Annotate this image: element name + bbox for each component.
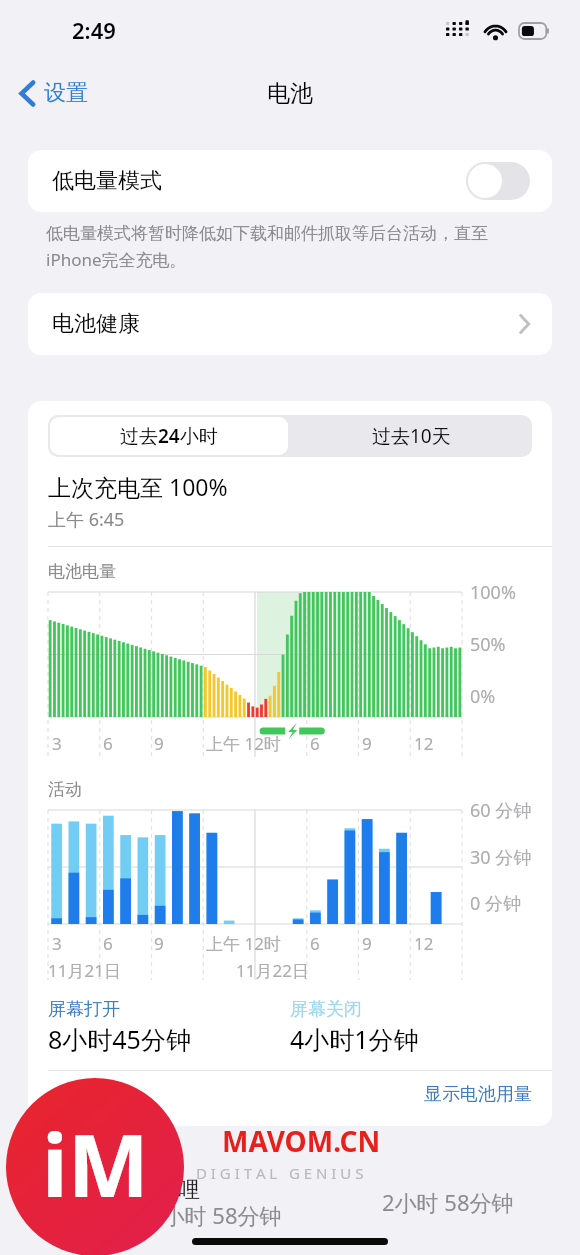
staticText: 哩: [178, 1176, 200, 1204]
staticText: 2小时 58分钟: [150, 1200, 282, 1230]
staticText: 3: [52, 732, 62, 755]
staticText: 上午 6:45: [48, 507, 125, 532]
staticText: 6: [103, 732, 113, 755]
staticText: 过去24小时: [120, 423, 218, 449]
staticText: 9: [362, 732, 372, 755]
staticText: 电池电量: [48, 561, 116, 582]
button[interactable]: 电池健康: [28, 293, 552, 355]
staticText: 50%: [470, 632, 552, 657]
staticText: 100%: [470, 580, 552, 605]
staticText: 9: [362, 932, 372, 955]
staticText: D I G I T A L G E N I U S: [196, 1163, 364, 1183]
staticText: iM: [42, 1105, 149, 1222]
staticText: 上次充电至 100%: [48, 471, 228, 502]
staticText: 电池: [267, 79, 313, 108]
staticText: 2:49: [72, 15, 116, 45]
staticText: 6: [103, 932, 113, 955]
button[interactable]: 过去24小时: [50, 417, 288, 455]
staticText: 低电量模式将暂时降低如下载和邮件抓取等后台活动，直至: [46, 223, 488, 244]
staticText: 0 分钟: [470, 891, 552, 916]
staticText: 30 分钟: [470, 845, 552, 870]
staticText: 0%: [470, 684, 552, 709]
staticText: 60 分钟: [470, 798, 552, 823]
staticText: 2小时 58分钟: [382, 1187, 514, 1217]
staticText: 低电量模式: [52, 167, 466, 195]
staticText: 4小时1分钟: [290, 1022, 419, 1056]
staticText: 上午 12时: [206, 932, 281, 955]
staticText: 6: [310, 732, 320, 755]
staticText: 3: [52, 932, 62, 955]
staticText: 屏幕关闭: [290, 998, 362, 1021]
button[interactable]: 显示电池用量: [28, 1081, 552, 1108]
staticText: 6: [310, 932, 320, 955]
staticText: MAVOM.CN: [222, 1122, 381, 1160]
staticText: 屏幕打开: [48, 998, 120, 1021]
staticText: 11月21日: [48, 959, 121, 982]
staticText: 11月22日: [236, 959, 309, 982]
staticText: 过去10天: [372, 423, 451, 449]
staticText: 活动: [48, 779, 82, 800]
staticText: 电池健康: [52, 310, 519, 338]
staticText: 上午 12时: [206, 732, 281, 755]
staticText: 显示电池用量: [424, 1083, 532, 1106]
button[interactable]: Low Power Mode toggle: [466, 162, 530, 200]
staticText: 12: [414, 932, 434, 955]
button[interactable]: 过去10天: [290, 415, 532, 457]
button[interactable]: 低电量模式: [28, 150, 552, 212]
staticText: 12: [414, 732, 434, 755]
button[interactable]: 设置: [14, 73, 94, 113]
staticText: 9: [154, 932, 164, 955]
staticText: iPhone完全充电。: [46, 248, 187, 271]
staticText: 8小时45分钟: [48, 1022, 191, 1056]
staticText: 设置: [44, 79, 88, 107]
staticText: 9: [154, 732, 164, 755]
